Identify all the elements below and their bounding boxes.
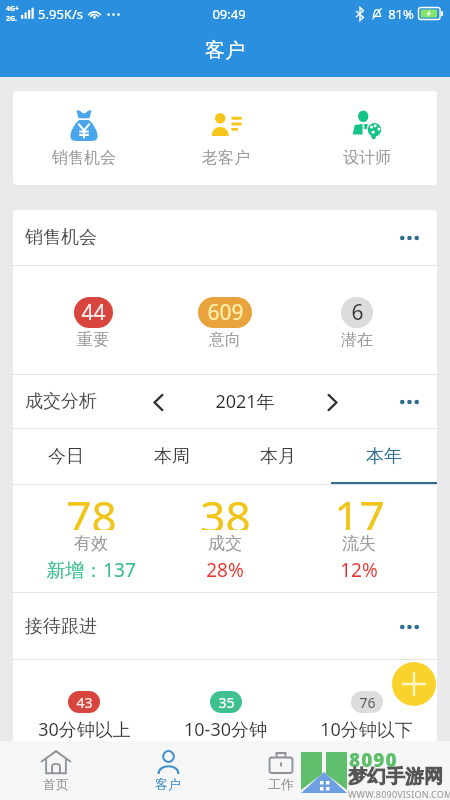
button[interactable]: 43 — [13, 691, 155, 742]
staticText: 销售机会 — [25, 226, 97, 249]
button[interactable]: 76 — [296, 691, 437, 742]
staticText: 8090 — [349, 747, 398, 773]
staticText: 成交 — [208, 533, 242, 554]
button[interactable]: More options — [390, 607, 429, 646]
staticText: 工作 — [268, 776, 294, 792]
button[interactable]: 客户 — [112, 750, 224, 792]
staticText: 老客户 — [202, 148, 250, 168]
staticText: 43 — [76, 693, 93, 712]
staticText: 销售机会 — [52, 148, 116, 168]
staticText: 38 — [200, 486, 251, 530]
staticText: 本月 — [260, 445, 296, 468]
staticText: 609 — [207, 298, 244, 327]
staticText: 4G+ — [6, 4, 20, 14]
staticText: 首页 — [43, 776, 69, 792]
staticText: 35 — [218, 693, 235, 712]
staticText: 本周 — [154, 445, 190, 468]
button[interactable]: 44 — [27, 297, 159, 350]
staticText: 28% — [206, 557, 244, 583]
staticText: 44 — [81, 298, 106, 327]
staticText: 09:49 — [212, 5, 246, 23]
staticText: 梦幻手游网 — [348, 765, 443, 789]
staticText: 2021年 — [215, 389, 275, 414]
staticText: 本年 — [366, 445, 402, 468]
staticText: 今日 — [48, 445, 84, 468]
staticText: WWW.8090VISION.COM — [348, 788, 450, 800]
staticText: 新增：137 — [46, 557, 136, 583]
staticText: 客户 — [205, 38, 245, 63]
staticText: 30分钟以上 — [38, 717, 131, 742]
staticText: 17 — [334, 486, 385, 530]
button[interactable]: 工作 — [224, 750, 337, 792]
staticText: 意向 — [209, 330, 241, 350]
staticText: 成交分析 — [25, 390, 97, 413]
button[interactable]: 今日 — [13, 429, 119, 484]
staticText: 重要 — [77, 330, 109, 350]
button[interactable]: 老客户 — [155, 98, 296, 178]
staticText: 76 — [359, 693, 376, 712]
staticText: 2G. — [6, 14, 18, 24]
staticText: 81% — [388, 5, 414, 23]
button[interactable]: 本月 — [225, 429, 331, 484]
button[interactable]: More options — [390, 218, 429, 257]
button[interactable]: 本周 — [119, 429, 225, 484]
staticText: 接待跟进 — [25, 615, 97, 638]
button[interactable]: 35 — [155, 691, 296, 742]
staticText: 5.95K/s — [38, 5, 83, 23]
button[interactable]: Next year — [315, 385, 349, 419]
staticText: 客户 — [155, 776, 181, 792]
staticText: 潜在 — [341, 330, 373, 350]
button[interactable]: 609 — [159, 297, 291, 350]
staticText: 78 — [66, 486, 117, 530]
button[interactable]: 本年 — [331, 429, 437, 484]
staticText: 12% — [340, 557, 378, 583]
button[interactable]: Add — [392, 662, 436, 706]
staticText: 10分钟以下 — [320, 717, 413, 742]
button[interactable]: Previous year — [141, 385, 175, 419]
staticText: 10-30分钟 — [184, 717, 267, 742]
button[interactable]: 设计师 — [296, 98, 437, 178]
staticText: 6 — [351, 298, 364, 327]
button[interactable]: More options — [390, 382, 429, 421]
staticText: 有效 — [74, 533, 108, 554]
button[interactable]: 首页 — [0, 750, 112, 792]
staticText: 流失 — [342, 533, 376, 554]
button[interactable]: 销售机会 — [13, 98, 155, 178]
staticText: 设计师 — [343, 148, 391, 168]
button[interactable]: 6 — [291, 297, 423, 350]
